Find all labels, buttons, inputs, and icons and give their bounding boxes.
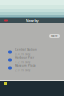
button[interactable]: Record <box>4 19 8 21</box>
staticText: More <box>51 34 58 38</box>
staticText: 0.4 mi away <box>15 52 30 56</box>
staticText: Harbour Pier <box>15 56 34 59</box>
button[interactable]: Museum Plaza <box>0 64 64 72</box>
staticText: Museum Plaza <box>15 64 36 67</box>
button[interactable]: Harbour Pier <box>0 56 64 64</box>
staticText: 1.2 mi away <box>15 60 30 64</box>
button[interactable]: More <box>49 34 60 38</box>
staticText: Central Station <box>15 48 37 51</box>
button[interactable]: Central Station <box>0 48 64 56</box>
staticText: Nearby <box>25 18 38 23</box>
staticText: 2.0 mi away <box>15 68 30 72</box>
